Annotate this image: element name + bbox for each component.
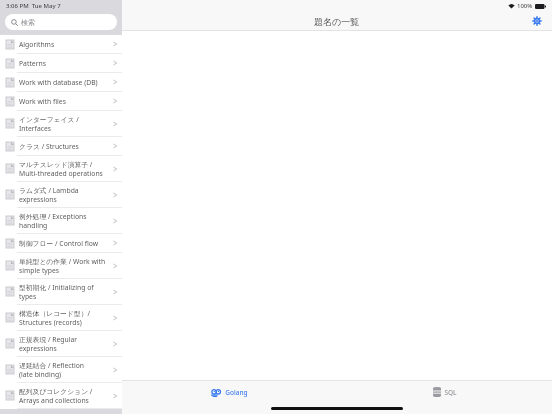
button[interactable]: 制御フロー / Control flow xyxy=(0,234,122,253)
staticText: マルチスレッド演算子 / xyxy=(19,160,93,169)
button[interactable]: Settings xyxy=(530,14,544,28)
staticText: Patterns xyxy=(19,59,46,68)
button[interactable]: Algorithms xyxy=(0,35,122,54)
staticText: インターフェイス / xyxy=(19,115,79,124)
staticText: handling xyxy=(19,221,48,230)
button[interactable]: 例外処理 / Exceptions xyxy=(0,208,122,234)
staticText: 単純型との作業 / Work with xyxy=(19,257,106,266)
staticText: クラス / Structures xyxy=(19,142,79,151)
staticText: Golang xyxy=(225,388,248,397)
staticText: Arrays and collections xyxy=(19,396,89,405)
button[interactable]: Work with files xyxy=(0,92,122,111)
staticText: expressions xyxy=(19,344,57,353)
staticText: Multi-threaded operations xyxy=(19,169,103,178)
staticText: expressions xyxy=(19,195,57,204)
staticText: 遅延結合 / Reflection xyxy=(19,361,85,370)
staticText: Work with database (DB) xyxy=(19,78,98,87)
staticText: ラムダ式 / Lambda xyxy=(19,186,79,195)
button[interactable]: 配列及びコレクション / xyxy=(0,383,122,409)
button[interactable]: Golang xyxy=(122,381,337,403)
staticText: Algorithms xyxy=(19,40,55,49)
button[interactable]: 正規表現 / Regular xyxy=(0,331,122,357)
staticText: 検索 xyxy=(21,18,35,27)
staticText: 構造体（レコード型）/ xyxy=(19,309,90,318)
button[interactable]: マルチスレッド演算子 / xyxy=(0,156,122,182)
button[interactable]: クラス / Structures xyxy=(0,137,122,156)
button[interactable]: ラムダ式 / Lambda xyxy=(0,182,122,208)
staticText: 型初期化 / Initializing of xyxy=(19,283,94,292)
staticText: (late binding) xyxy=(19,370,62,379)
staticText: simple types xyxy=(19,266,60,275)
staticText: 制御フロー / Control flow xyxy=(19,239,99,248)
staticText: Structures (records) xyxy=(19,318,82,327)
staticText: Work with files xyxy=(19,97,66,106)
staticText: Interfaces xyxy=(19,124,52,133)
button[interactable]: 構造体（レコード型）/ xyxy=(0,305,122,331)
button[interactable]: インターフェイス / xyxy=(0,111,122,137)
staticText: 正規表現 / Regular xyxy=(19,335,78,344)
button[interactable]: 検索 xyxy=(5,14,117,30)
staticText: SQL xyxy=(444,388,457,397)
staticText: 3:06 PM Tue May 7 xyxy=(6,2,61,10)
button[interactable]: 型初期化 / Initializing of xyxy=(0,279,122,305)
staticText: 例外処理 / Exceptions xyxy=(19,212,87,221)
button[interactable]: Patterns xyxy=(0,54,122,73)
staticText: 題名の一覧 xyxy=(314,16,360,27)
staticText: types xyxy=(19,292,37,301)
staticText: 配列及びコレクション / xyxy=(19,387,93,396)
button[interactable]: 遅延結合 / Reflection xyxy=(0,357,122,383)
button[interactable]: Work with database (DB) xyxy=(0,73,122,92)
button[interactable]: 単純型との作業 / Work with xyxy=(0,253,122,279)
button[interactable]: SQL xyxy=(337,381,552,403)
staticText: 100% xyxy=(517,2,533,10)
